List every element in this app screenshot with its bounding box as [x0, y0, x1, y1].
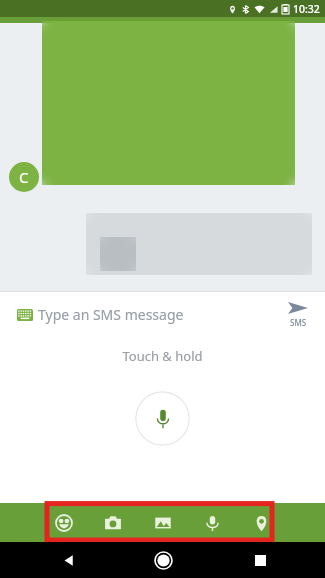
button[interactable]: Audio [198, 509, 226, 537]
button[interactable]: Gallery [149, 509, 177, 537]
button[interactable]: Recent apps [247, 547, 273, 573]
button[interactable]: Type an SMS message [38, 292, 271, 337]
button[interactable]: Camera [99, 509, 127, 537]
staticText: C [19, 167, 29, 187]
button[interactable]: Stickers [50, 509, 78, 537]
button[interactable]: Contact avatar [9, 162, 39, 192]
button[interactable]: Send SMS [271, 292, 325, 337]
staticText: SMS [290, 317, 307, 328]
staticText: Type an SMS message [38, 305, 184, 324]
staticText: 10:32 [293, 2, 320, 16]
button[interactable]: Keyboard [14, 304, 36, 326]
button[interactable]: Back [56, 547, 82, 573]
staticText: Touch & hold [122, 347, 203, 365]
button[interactable]: Home [149, 546, 177, 574]
button[interactable]: Voice input [135, 391, 190, 446]
button[interactable]: Location [247, 509, 275, 537]
